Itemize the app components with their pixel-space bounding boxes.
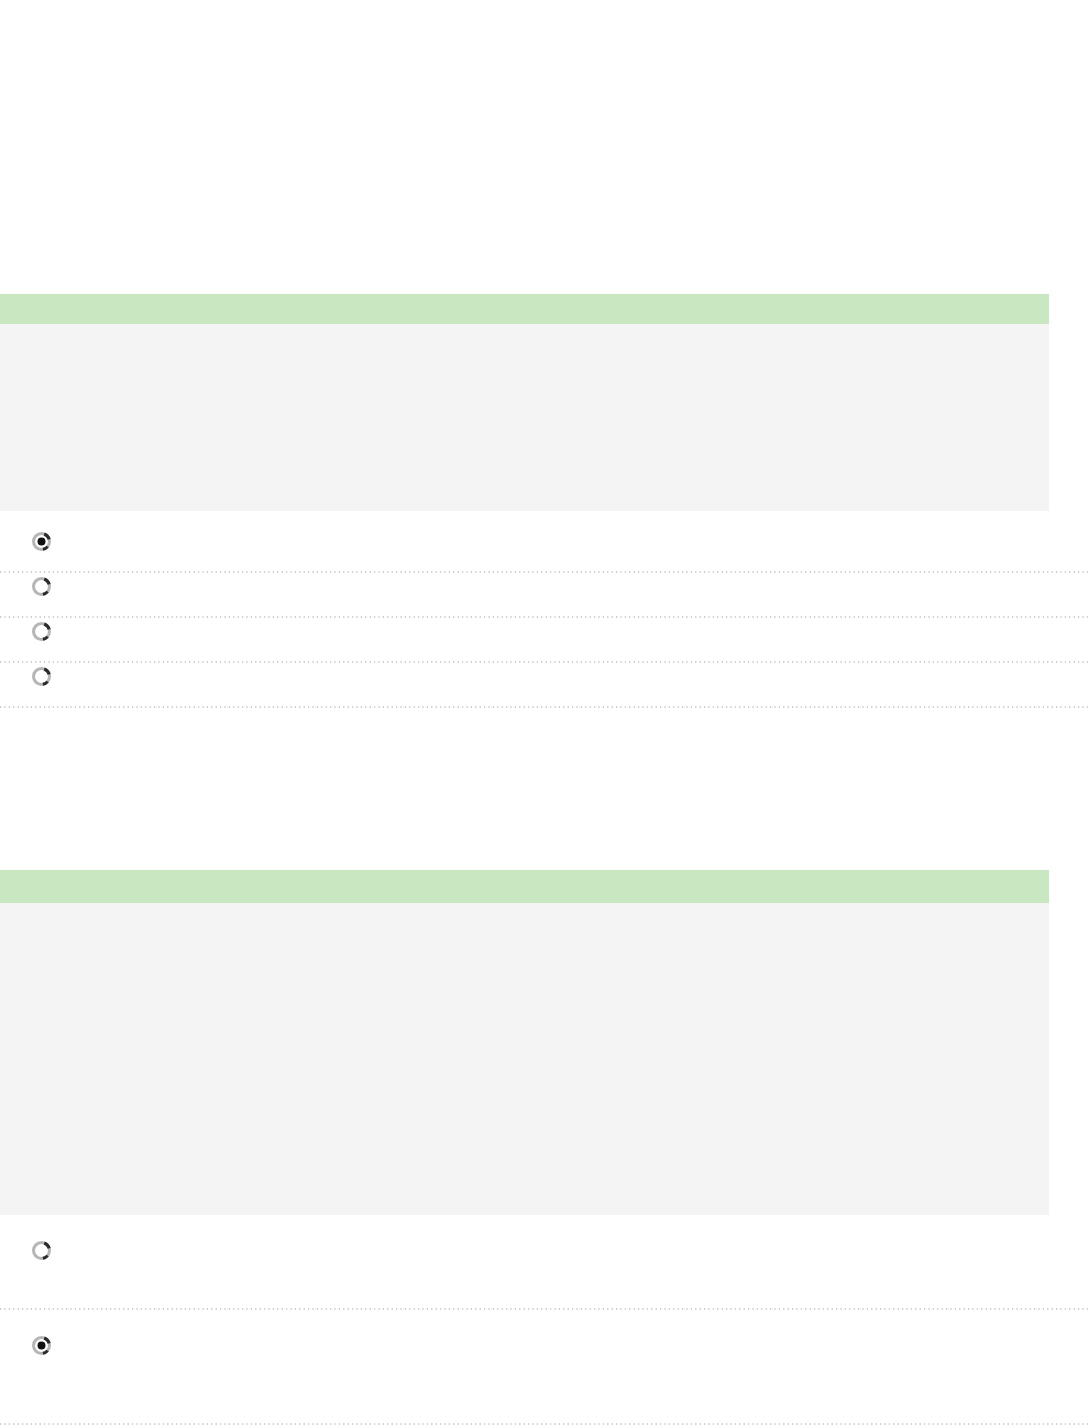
button[interactable]: Option 1 selected (0, 528, 1090, 573)
button[interactable]: Option 3 (0, 618, 1090, 663)
button[interactable]: Choice A (0, 1215, 1090, 1310)
button[interactable]: Option 4 (0, 663, 1090, 708)
button[interactable]: Choice B selected (0, 1310, 1090, 1425)
button[interactable]: Option 2 (0, 573, 1090, 618)
